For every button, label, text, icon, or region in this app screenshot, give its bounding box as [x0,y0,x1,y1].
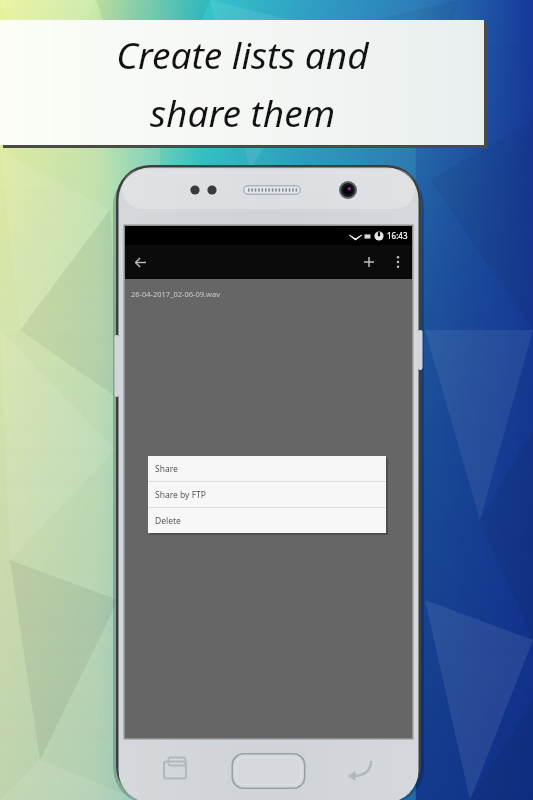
button[interactable]: Back [125,247,155,277]
staticText: 26-04-2017_02-06-09.wav [131,289,220,299]
staticText: 16:43 [387,230,408,241]
button[interactable]: Add [354,247,384,277]
button[interactable]: Share [148,456,386,481]
staticText: Delete [155,515,181,527]
button[interactable]: Share by FTP [148,482,386,507]
button[interactable]: 26-04-2017_02-06-09.wav [125,279,412,309]
button[interactable]: More options [384,248,412,276]
staticText: Share [155,463,178,475]
button[interactable]: Delete [148,508,386,533]
staticText: Share by FTP [155,489,206,501]
staticText: Create lists and share them [116,29,369,137]
